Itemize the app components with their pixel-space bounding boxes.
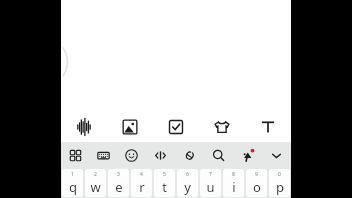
button[interactable]: 4: [131, 169, 152, 197]
staticText: t: [162, 178, 167, 196]
button[interactable]: Checklist: [153, 112, 199, 142]
staticText: 2: [94, 171, 97, 178]
button[interactable]: Collapse: [262, 142, 291, 168]
staticText: 8: [232, 171, 235, 178]
button[interactable]: 6: [177, 169, 198, 197]
staticText: 0: [278, 171, 281, 178]
staticText: u: [206, 178, 215, 196]
staticText: 6: [186, 171, 189, 178]
button[interactable]: 7: [200, 169, 221, 197]
button[interactable]: 0: [269, 169, 290, 197]
button[interactable]: 8: [223, 169, 244, 197]
button[interactable]: Sticker: [199, 112, 245, 142]
staticText: e: [115, 178, 123, 196]
button[interactable]: 2: [85, 169, 106, 197]
button[interactable]: 3: [108, 169, 129, 197]
staticText: 7: [209, 171, 212, 178]
button[interactable]: Keyboard: [89, 142, 117, 168]
button[interactable]: Insert image: [107, 112, 153, 142]
button[interactable]: 5: [154, 169, 175, 197]
staticText: y: [184, 178, 191, 196]
staticText: q: [69, 178, 77, 196]
button[interactable]: Text format: [245, 112, 291, 142]
staticText: 4: [140, 171, 143, 178]
button[interactable]: Search: [204, 142, 233, 168]
button[interactable]: Translate: [146, 142, 175, 168]
staticText: r: [139, 178, 145, 196]
button[interactable]: Clips: [175, 142, 204, 168]
staticText: 3: [117, 171, 120, 178]
staticText: 9: [255, 171, 258, 178]
staticText: w: [90, 178, 101, 196]
staticText: p: [276, 178, 284, 196]
staticText: o: [253, 178, 261, 196]
button[interactable]: 9: [246, 169, 267, 197]
button[interactable]: 1: [62, 169, 83, 197]
button[interactable]: Emoji: [117, 142, 146, 168]
button[interactable]: Audio: [61, 112, 107, 142]
button[interactable]: Stickers: [233, 142, 262, 168]
staticText: 1: [71, 171, 74, 178]
staticText: 5: [163, 171, 166, 178]
staticText: i: [232, 178, 236, 196]
button[interactable]: Clipboard grid: [61, 142, 89, 168]
